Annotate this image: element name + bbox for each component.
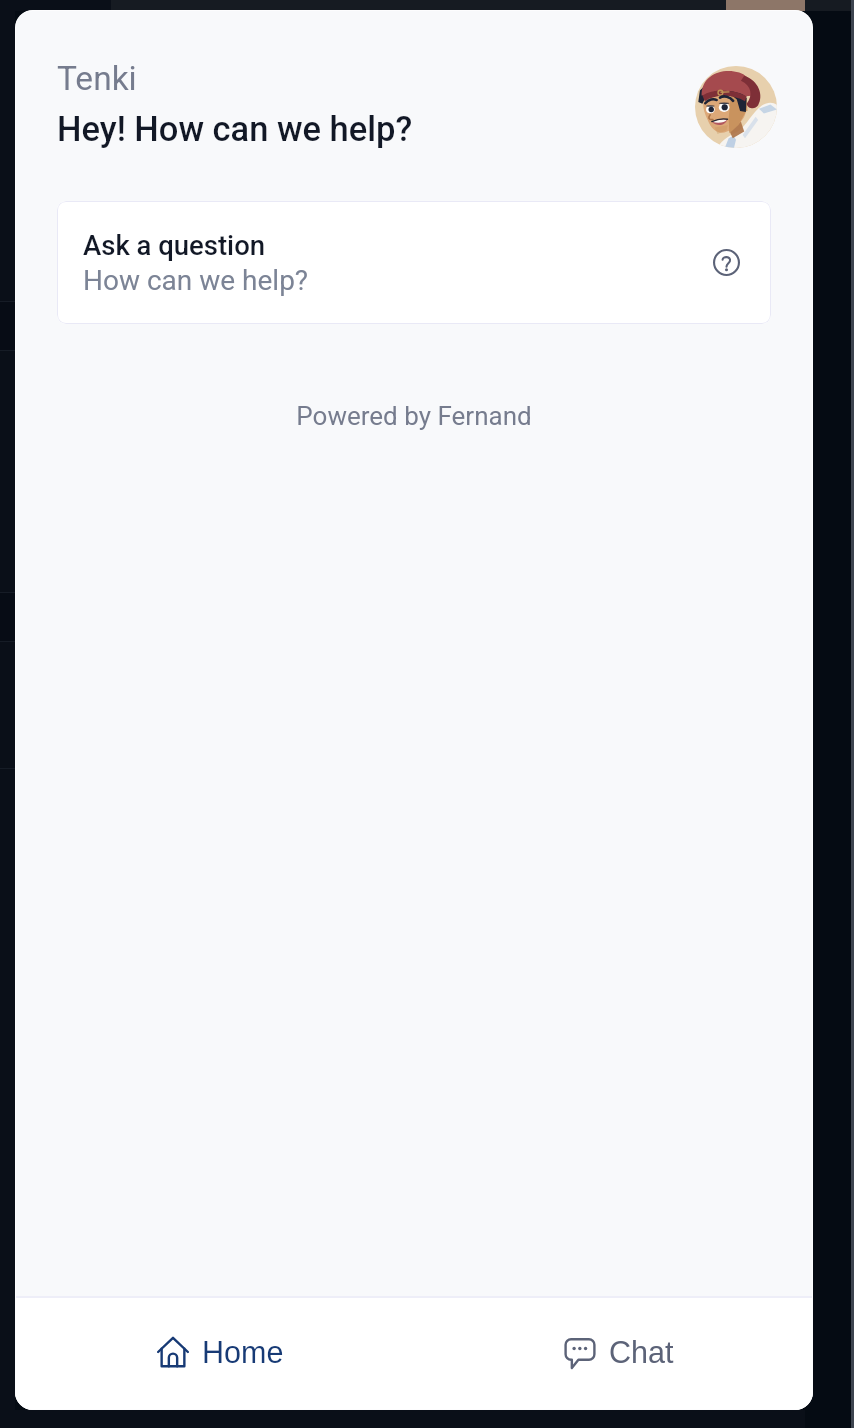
staticText: How can we help? <box>83 264 309 297</box>
staticText: Tenki <box>57 59 137 98</box>
other: Help <box>713 249 740 276</box>
button[interactable]: Ask a question <box>57 201 771 324</box>
button[interactable]: Chat <box>424 1298 813 1410</box>
staticText: Home <box>202 1335 284 1369</box>
staticText: Hey! How can we help? <box>57 109 413 149</box>
staticText: Ask a question <box>83 229 266 261</box>
button[interactable]: Home <box>27 1298 414 1410</box>
other: Agent avatar <box>695 66 777 148</box>
staticText: Powered by Fernand <box>15 401 813 431</box>
staticText: Chat <box>609 1335 674 1369</box>
